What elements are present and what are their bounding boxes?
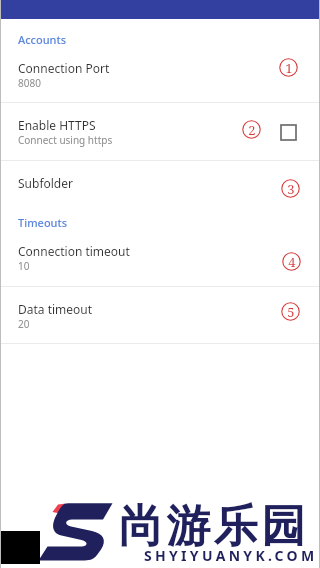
button[interactable]: Data timeout xyxy=(0,287,320,343)
staticText: Subfolder xyxy=(18,175,73,191)
button[interactable]: Connection timeout xyxy=(0,229,320,286)
staticText: 4 xyxy=(288,253,296,271)
staticText: 尚游乐园 xyxy=(117,499,307,554)
staticText: 8080 xyxy=(18,76,41,90)
button[interactable]: Subfolder xyxy=(0,161,320,202)
staticText: Connection Port xyxy=(18,60,110,76)
staticText: 5 xyxy=(287,303,295,321)
button[interactable]: Enable HTTPS xyxy=(0,103,320,160)
staticText: Connection timeout xyxy=(18,243,130,259)
staticText: 2 xyxy=(248,121,256,139)
staticText: Data timeout xyxy=(18,301,93,317)
staticText: Timeouts xyxy=(18,215,68,230)
staticText: Accounts xyxy=(18,32,67,47)
staticText: 20 xyxy=(18,317,30,331)
staticText: Connect using https xyxy=(18,133,113,147)
staticText: SHYIYUANYK.COM xyxy=(144,546,318,565)
button[interactable]: Enable HTTPS checkbox xyxy=(281,125,296,140)
staticText: Enable HTTPS xyxy=(18,117,96,133)
staticText: 1 xyxy=(285,59,293,77)
staticText: 10 xyxy=(18,259,30,273)
staticText: 3 xyxy=(287,180,295,198)
button[interactable]: Connection Port xyxy=(0,46,320,102)
